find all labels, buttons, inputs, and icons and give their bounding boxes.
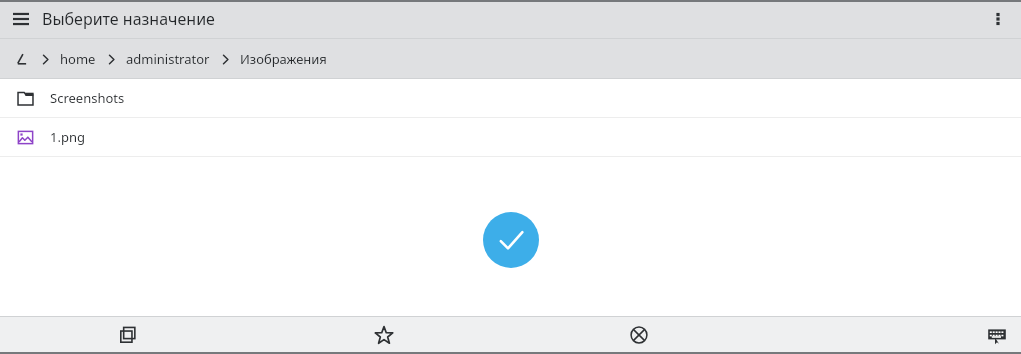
button[interactable]: Cancel bbox=[511, 316, 766, 354]
button[interactable]: 1.png bbox=[0, 118, 1021, 156]
staticText: 1.png bbox=[50, 128, 85, 146]
button[interactable]: Root bbox=[10, 48, 32, 70]
button[interactable]: administrator bbox=[124, 46, 212, 72]
button[interactable]: Изображения bbox=[238, 46, 329, 72]
button[interactable]: Menu bbox=[8, 6, 34, 32]
staticText: Выберите назначение bbox=[42, 8, 215, 30]
button[interactable]: Keyboard bbox=[766, 316, 1021, 354]
button[interactable]: Confirm bbox=[483, 212, 539, 268]
button[interactable]: Screenshots bbox=[0, 79, 1021, 117]
staticText: administrator bbox=[126, 50, 210, 68]
staticText: home bbox=[60, 50, 96, 68]
button[interactable]: home bbox=[58, 46, 98, 72]
button[interactable]: More options bbox=[983, 4, 1013, 34]
button[interactable]: Recents bbox=[0, 316, 256, 354]
button[interactable]: Favorites bbox=[256, 316, 511, 354]
staticText: Изображения bbox=[240, 50, 327, 68]
staticText: Screenshots bbox=[50, 89, 125, 107]
